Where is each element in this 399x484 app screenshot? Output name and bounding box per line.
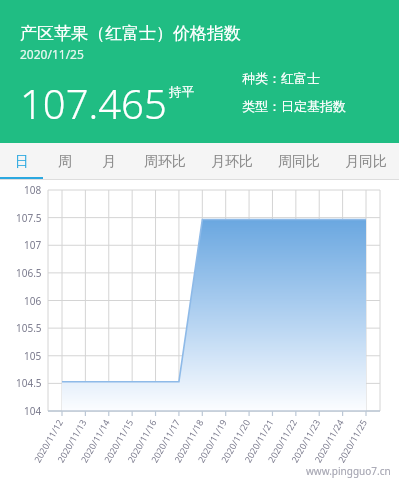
button[interactable]: 周 (43, 143, 87, 180)
staticText: 周环比 (144, 153, 186, 171)
staticText: 月 (102, 153, 116, 171)
staticText: 种类：红富士 (242, 70, 320, 86)
button[interactable]: 周同比 (265, 143, 332, 180)
staticText: 月环比 (211, 153, 253, 171)
staticText: 产区苹果（红富士）价格指数 (20, 23, 241, 44)
staticText: 月同比 (345, 153, 387, 171)
staticText: 周同比 (278, 153, 320, 171)
button[interactable]: 日 (0, 143, 43, 180)
staticText: 日 (15, 153, 29, 171)
staticText: 持平 (169, 84, 194, 100)
staticText: 类型：日定基指数 (242, 98, 346, 114)
staticText: 周 (58, 153, 72, 171)
button[interactable]: 月 (87, 143, 131, 180)
button[interactable]: 周环比 (131, 143, 198, 180)
button[interactable]: 月同比 (332, 143, 399, 180)
staticText: 2020/11/25 (20, 46, 84, 62)
button[interactable]: 月环比 (198, 143, 265, 180)
staticText: 107.465 (20, 76, 167, 130)
